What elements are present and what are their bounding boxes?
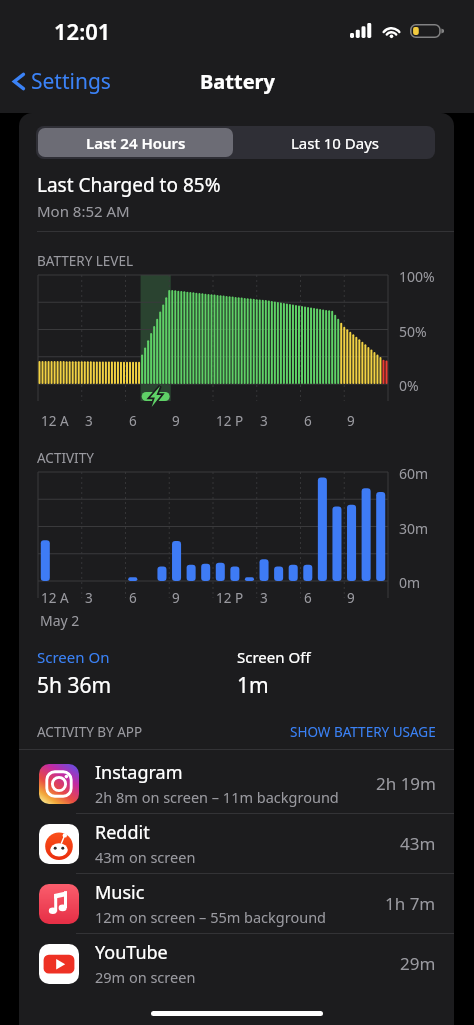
staticText: May 2	[40, 611, 80, 630]
staticText: 2h 19m	[376, 772, 436, 795]
staticText: YouTube	[95, 940, 168, 965]
staticText: BATTERY LEVEL	[37, 252, 134, 270]
staticText: Instagram	[95, 760, 183, 785]
staticText: Music	[95, 880, 145, 905]
staticText: 43m	[400, 832, 436, 855]
staticText: 9	[172, 412, 180, 430]
staticText: 3	[85, 589, 93, 607]
staticText: 6	[129, 589, 137, 607]
button[interactable]: Screen On	[37, 647, 110, 667]
staticText: 0m	[399, 573, 421, 592]
staticText: 12 A	[41, 412, 69, 430]
staticText: 1h 7m	[385, 892, 436, 915]
staticText: 30m	[399, 519, 429, 538]
staticText: Settings	[31, 67, 111, 96]
staticText: 6	[129, 412, 137, 430]
staticText: ACTIVITY BY APP	[37, 723, 143, 741]
staticText: 12 P	[216, 412, 244, 430]
staticText: Mon 8:52 AM	[37, 201, 130, 221]
staticText: 29m on screen	[95, 967, 196, 987]
staticText: 2h 8m on screen – 11m background	[95, 787, 339, 807]
staticText: 0%	[399, 376, 419, 395]
staticText: 9	[347, 589, 355, 607]
button[interactable]: Last 24 Hours	[38, 128, 233, 157]
staticText: ACTIVITY	[37, 449, 94, 467]
staticText: 12 P	[216, 589, 244, 607]
staticText: Screen Off	[237, 647, 311, 667]
staticText: 6	[304, 412, 312, 430]
staticText: 12:01	[54, 16, 111, 46]
staticText: 43m on screen	[95, 847, 196, 867]
staticText: 1m	[237, 671, 269, 700]
button[interactable]: Reddit	[19, 814, 454, 873]
staticText: 6	[304, 589, 312, 607]
staticText: Last 10 Days	[291, 133, 380, 153]
staticText: 9	[172, 589, 180, 607]
staticText: 3	[260, 589, 268, 607]
button[interactable]: Instagram	[19, 754, 454, 813]
staticText: 12m on screen – 55m background	[95, 907, 327, 927]
staticText: 3	[260, 412, 268, 430]
staticText: 12 A	[41, 589, 69, 607]
button[interactable]: Last 10 Days	[235, 126, 435, 159]
staticText: Last 24 Hours	[86, 133, 186, 153]
staticText: 3	[85, 412, 93, 430]
button[interactable]: YouTube	[19, 934, 454, 993]
staticText: 9	[347, 412, 355, 430]
button[interactable]: SHOW BATTERY USAGE	[290, 723, 436, 741]
staticText: Battery	[200, 68, 275, 95]
staticText: Reddit	[95, 820, 150, 845]
staticText: 5h 36m	[37, 671, 112, 700]
staticText: 50%	[399, 322, 427, 341]
button[interactable]: Settings	[0, 61, 121, 102]
button[interactable]: Music	[19, 874, 454, 933]
staticText: Last Charged to 85%	[37, 172, 221, 198]
staticText: 100%	[399, 267, 435, 286]
staticText: 60m	[399, 464, 429, 483]
staticText: 29m	[400, 952, 436, 975]
